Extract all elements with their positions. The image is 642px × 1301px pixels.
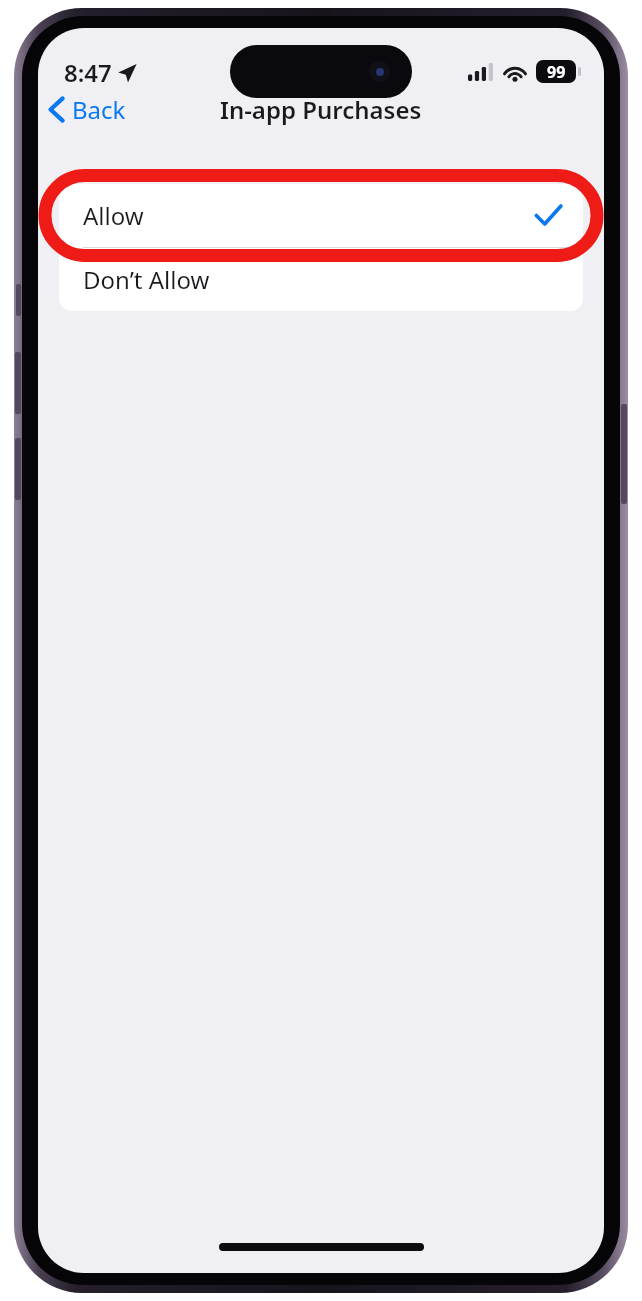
button[interactable]: Don’t Allow <box>59 248 583 311</box>
staticText: Allow <box>83 199 144 232</box>
staticText: 8:47 <box>64 56 112 89</box>
staticText: Back <box>72 93 126 126</box>
button[interactable]: Allow <box>59 184 583 247</box>
button[interactable]: Back <box>38 87 138 132</box>
staticText: 99 <box>547 61 566 83</box>
staticText: Don’t Allow <box>83 263 210 296</box>
other: Selected <box>535 204 562 227</box>
other: Back <box>48 96 65 123</box>
staticText: In-app Purchases <box>220 93 422 126</box>
